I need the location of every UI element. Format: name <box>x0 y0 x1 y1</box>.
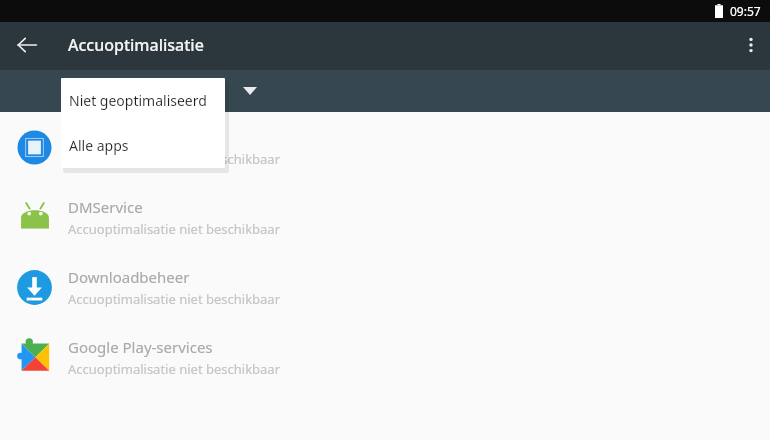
button[interactable]: Alle apps <box>61 123 225 168</box>
staticText: DMService <box>68 197 143 217</box>
staticText: Alle apps <box>69 136 129 155</box>
staticText: Accuoptimalisatie <box>68 34 204 56</box>
staticText: Accuoptimalisatie niet beschikbaar <box>68 360 281 378</box>
staticText: Chromecast built-in <box>68 127 206 147</box>
staticText: Niet geoptimaliseerd <box>69 91 207 110</box>
staticText: Accuoptimalisatie niet beschikbaar <box>68 290 281 308</box>
button[interactable]: Meer opties <box>727 21 770 69</box>
button[interactable]: Filter selecteren <box>228 74 272 108</box>
button[interactable]: Niet geoptimaliseerd <box>61 78 225 123</box>
staticText: Accuoptimalisatie niet beschikbaar <box>68 220 281 238</box>
button[interactable]: Terug <box>3 21 51 69</box>
staticText: Google Play-services <box>68 337 213 357</box>
staticText: Downloadbeheer <box>68 267 190 287</box>
button[interactable]: Chromecast built-in <box>0 112 770 182</box>
staticText: Accuoptimalisatie niet beschikbaar <box>68 150 281 168</box>
button[interactable]: Google Play-services <box>0 322 770 392</box>
button[interactable]: Downloadbeheer <box>0 252 770 322</box>
staticText: 09:57 <box>730 3 761 19</box>
button[interactable]: DMService <box>0 182 770 252</box>
